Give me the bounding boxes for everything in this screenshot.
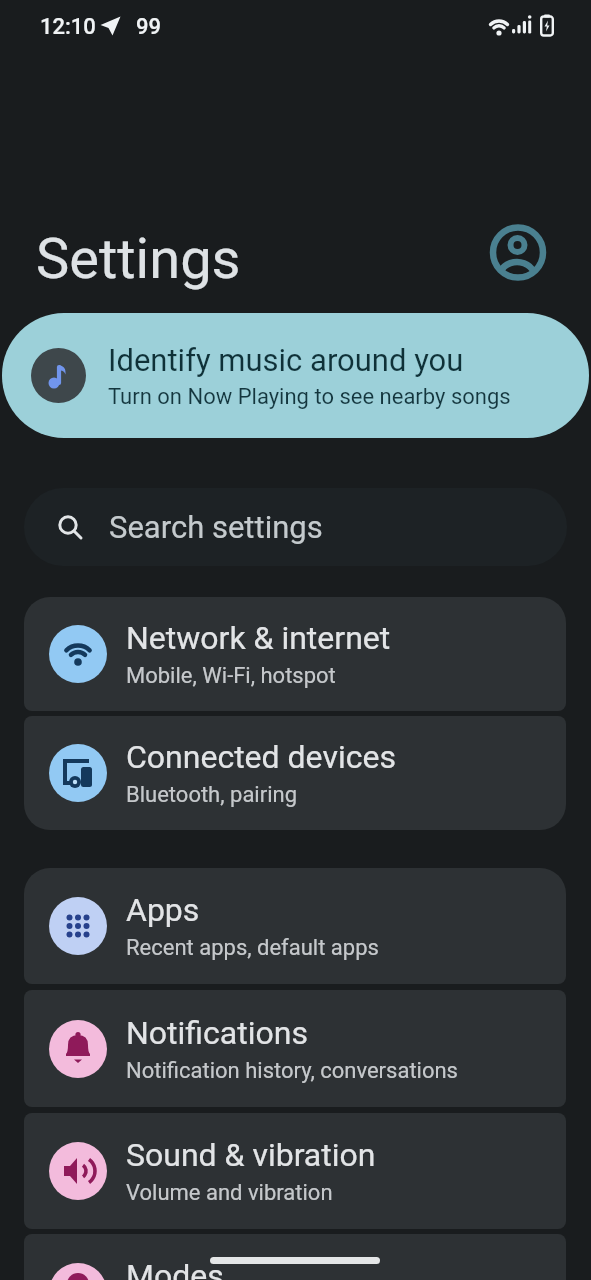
button[interactable]: Apps <box>24 868 566 984</box>
staticText: Network & internet <box>126 619 391 657</box>
staticText: Modes <box>126 1257 224 1280</box>
staticText: 12:10 <box>40 14 96 40</box>
button[interactable]: Modes <box>24 1234 566 1280</box>
staticText: Settings <box>36 226 241 292</box>
staticText: Apps <box>126 891 200 929</box>
button[interactable]: Identify music around you <box>2 313 589 438</box>
button[interactable]: Search settings <box>24 488 567 566</box>
staticText: Mobile, Wi-Fi, hotspot <box>126 663 336 689</box>
staticText: Search settings <box>109 509 323 545</box>
button[interactable]: Sound & vibration <box>24 1113 566 1229</box>
button[interactable]: Notifications <box>24 990 566 1107</box>
staticText: Connected devices <box>126 738 396 776</box>
staticText: Notification history, conversations <box>126 1058 458 1084</box>
staticText: Sound & vibration <box>126 1136 376 1174</box>
staticText: 99 <box>136 14 162 40</box>
staticText: Notifications <box>126 1014 308 1052</box>
staticText: Turn on Now Playing to see nearby songs <box>108 384 511 410</box>
staticText: Recent apps, default apps <box>126 935 379 961</box>
staticText: Bluetooth, pairing <box>126 782 298 808</box>
staticText: Identify music around you <box>108 342 464 378</box>
staticText: Volume and vibration <box>126 1180 333 1206</box>
button[interactable] <box>488 222 548 282</box>
button[interactable]: Network & internet <box>24 597 566 711</box>
button[interactable]: Connected devices <box>24 716 566 830</box>
